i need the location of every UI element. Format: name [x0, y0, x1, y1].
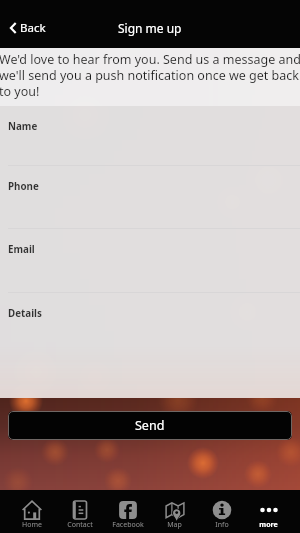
button[interactable]: Contact: [56, 490, 104, 533]
staticText: Info: [215, 520, 229, 530]
staticText: Phone: [8, 180, 39, 193]
staticText: Name: [8, 120, 38, 133]
staticText: Contact: [67, 520, 93, 530]
staticText: Facebook: [112, 520, 144, 530]
button[interactable]: Map: [151, 490, 198, 533]
staticText: Home: [22, 520, 42, 530]
button[interactable]: Details: [0, 293, 300, 392]
button[interactable]: Email: [0, 229, 300, 293]
button[interactable]: Facebook: [104, 490, 151, 533]
button[interactable]: Info: [198, 490, 245, 533]
staticText: Back: [20, 20, 46, 36]
staticText: Sign me up: [118, 20, 182, 36]
button[interactable]: Name: [0, 106, 300, 166]
button[interactable]: Back: [7, 15, 49, 41]
staticText: Send: [135, 417, 165, 434]
button[interactable]: Home: [8, 490, 56, 533]
staticText: more: [259, 520, 278, 530]
button[interactable]: more: [245, 490, 292, 533]
button[interactable]: Send: [8, 411, 292, 440]
button[interactable]: Phone: [0, 166, 300, 229]
staticText: We'd love to hear from you. Send us a me…: [0, 51, 300, 100]
staticText: Email: [8, 243, 35, 256]
staticText: Details: [8, 307, 42, 320]
staticText: Map: [167, 520, 182, 530]
